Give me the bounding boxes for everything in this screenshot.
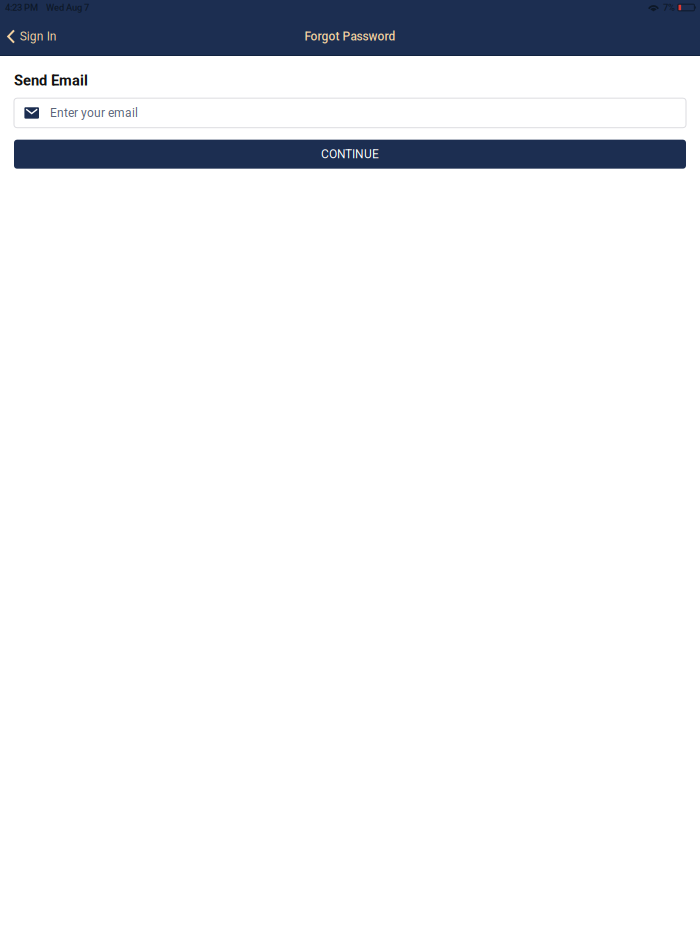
- button[interactable]: Enter your email: [14, 98, 686, 128]
- staticText: CONTINUE: [321, 147, 379, 161]
- staticText: Forgot Password: [304, 29, 395, 44]
- staticText: Sign In: [20, 29, 57, 44]
- staticText: 4:23 PM: [5, 2, 38, 13]
- staticText: Wed Aug 7: [46, 2, 89, 13]
- staticText: 7%: [663, 2, 675, 13]
- button[interactable]: CONTINUE: [14, 140, 686, 169]
- staticText: Send Email: [14, 72, 88, 89]
- button[interactable]: Sign In: [0, 23, 66, 50]
- staticText: Enter your email: [50, 106, 138, 120]
